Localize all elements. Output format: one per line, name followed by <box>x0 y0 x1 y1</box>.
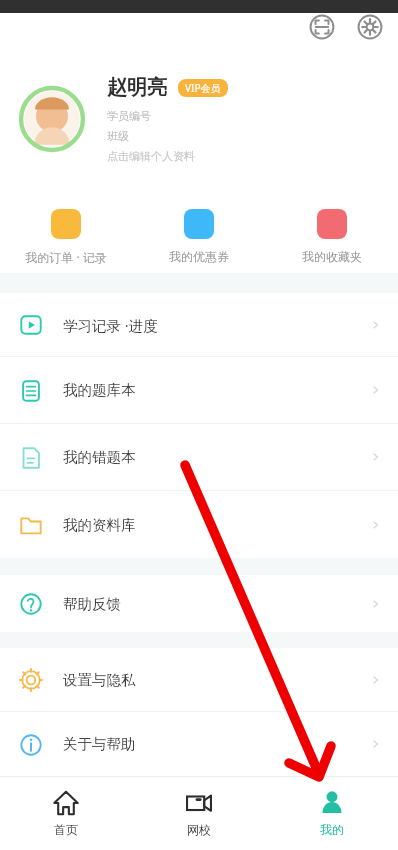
button[interactable]: 关于与帮助 <box>0 712 398 776</box>
staticText: 我的 <box>320 822 344 837</box>
button[interactable]: 我的 <box>265 777 398 850</box>
button[interactable]: 帮助反馈 <box>0 575 398 632</box>
staticText: 关于与帮助 <box>63 735 136 753</box>
staticText: 点击编辑个人资料 <box>107 149 195 163</box>
button[interactable]: 网校 <box>132 777 265 850</box>
staticText: 我的错题本 <box>63 448 136 466</box>
button[interactable]: 我的错题本 <box>0 424 398 490</box>
staticText: 首页 <box>54 822 78 837</box>
staticText: 赵明亮 <box>107 75 167 100</box>
staticText: VIP会员 <box>185 81 221 95</box>
staticText: 班级 <box>107 129 129 143</box>
button[interactable]: 我的收藏夹 <box>265 181 398 273</box>
staticText: 设置与隐私 <box>63 671 136 689</box>
staticText: 网校 <box>187 822 211 837</box>
button[interactable]: 我的资料库 <box>0 491 398 558</box>
button[interactable]: 首页 <box>0 777 132 850</box>
button[interactable]: Settings <box>356 13 384 41</box>
button[interactable]: Scan <box>308 13 336 41</box>
staticText: 我的题库本 <box>63 381 136 399</box>
button[interactable]: 我的优惠券 <box>132 181 265 273</box>
staticText: 我的收藏夹 <box>302 249 362 264</box>
button[interactable]: 设置与隐私 <box>0 648 398 711</box>
staticText: 学员编号 <box>107 109 151 123</box>
staticText: 帮助反馈 <box>63 595 121 613</box>
button[interactable]: 学习记录 ·进度 <box>0 293 398 356</box>
staticText: 我的订单 · 记录 <box>25 249 107 265</box>
staticText: 我的资料库 <box>63 516 136 534</box>
staticText: 我的优惠券 <box>169 249 229 264</box>
button[interactable]: 我的订单 · 记录 <box>0 181 132 273</box>
staticText: 学习记录 ·进度 <box>63 315 158 335</box>
button[interactable]: 赵明亮 <box>0 57 398 181</box>
button[interactable]: 我的题库本 <box>0 357 398 423</box>
